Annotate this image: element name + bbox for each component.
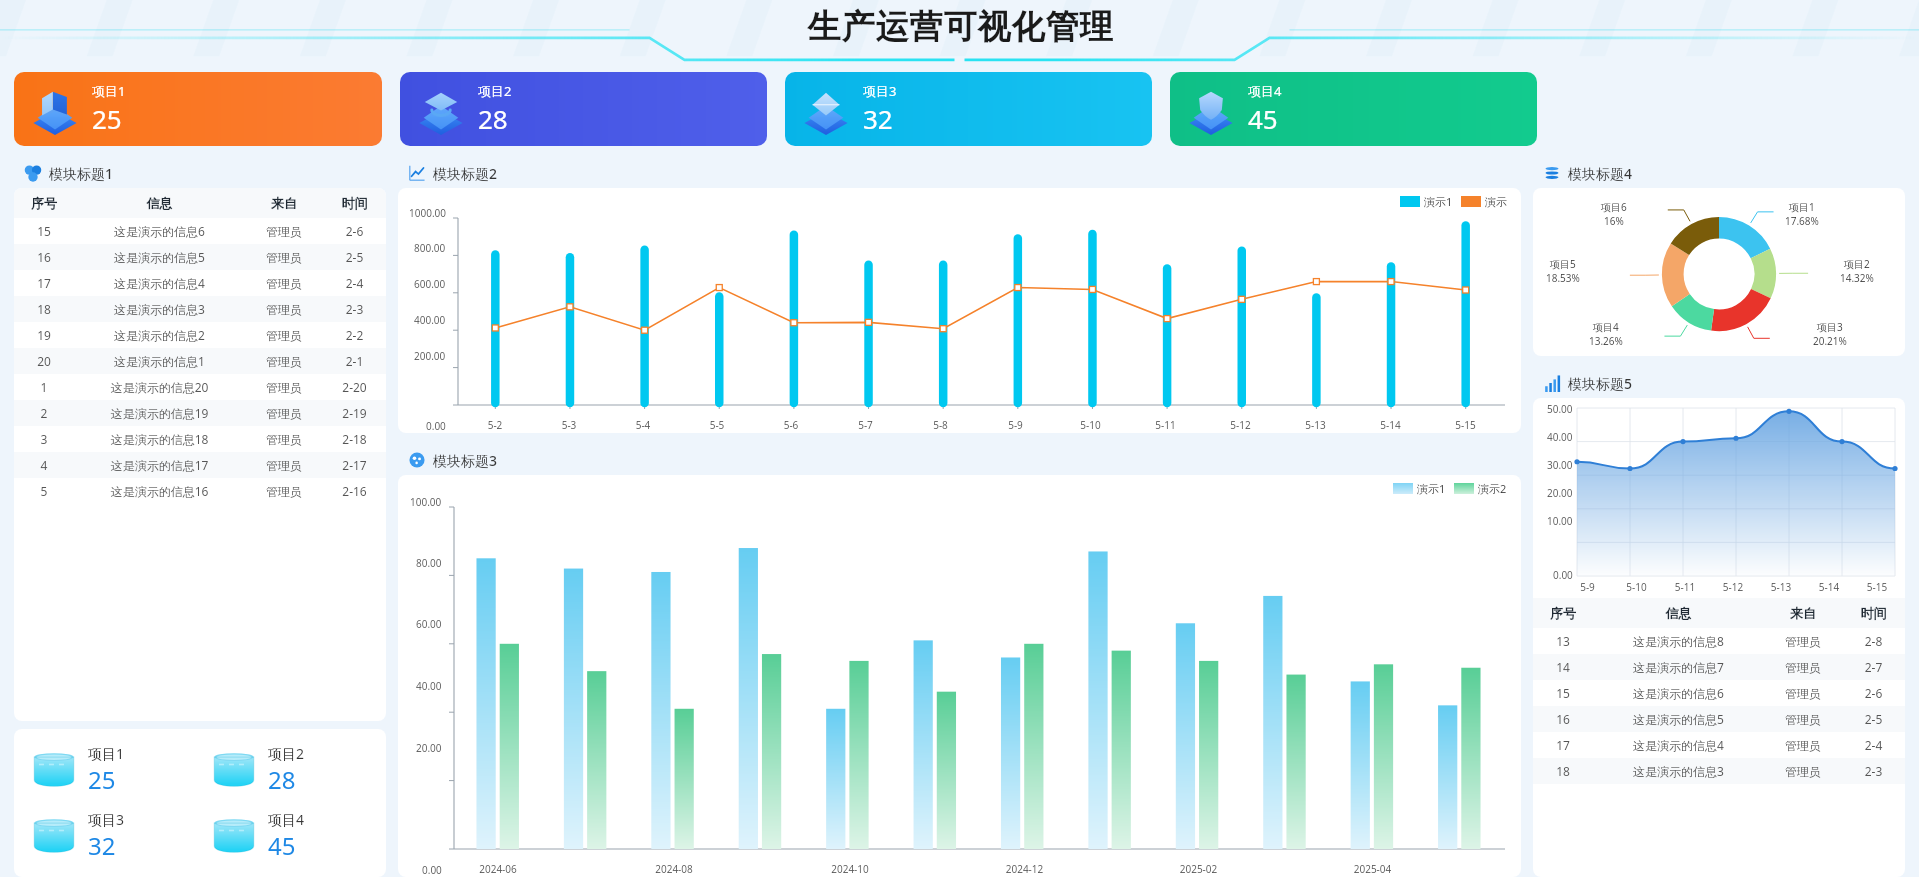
staticText: 5-13 bbox=[1278, 418, 1353, 432]
staticText: 30.00 bbox=[1547, 458, 1573, 472]
button[interactable]: 模块标题5 bbox=[1543, 368, 1905, 398]
staticText: 这是演示的信息3 bbox=[1593, 763, 1764, 779]
staticText: 18.53% bbox=[1546, 271, 1580, 285]
staticText: 2024-08 bbox=[630, 862, 718, 876]
button[interactable]: 3 bbox=[14, 426, 386, 452]
button[interactable]: 13 bbox=[1533, 628, 1905, 654]
staticText: 序号 bbox=[14, 195, 74, 211]
staticText: 5-10 bbox=[1612, 580, 1661, 594]
staticText: 项目1 bbox=[88, 744, 125, 763]
button[interactable]: 项目2 bbox=[400, 72, 767, 146]
staticText: 15 bbox=[14, 223, 74, 239]
staticText: 5-2 bbox=[458, 418, 532, 432]
staticText: 项目4 bbox=[1248, 82, 1282, 100]
staticText: 演示1 bbox=[1424, 194, 1453, 209]
staticText: 这是演示的信息2 bbox=[74, 327, 245, 343]
staticText: 管理员 bbox=[245, 484, 323, 499]
staticText: 这是演示的信息19 bbox=[74, 405, 245, 421]
staticText: 5-4 bbox=[606, 418, 680, 432]
button[interactable]: 项目1 bbox=[14, 72, 382, 146]
button[interactable]: 14 bbox=[1533, 654, 1905, 680]
staticText: 这是演示的信息6 bbox=[74, 223, 245, 239]
staticText: 5-10 bbox=[1053, 418, 1128, 432]
staticText: 项目2 bbox=[1844, 257, 1870, 271]
button[interactable]: 5 bbox=[14, 478, 386, 504]
staticText: 2-7 bbox=[1842, 659, 1905, 675]
staticText: 17 bbox=[14, 275, 74, 291]
button[interactable]: 15 bbox=[14, 218, 386, 244]
button[interactable]: 15 bbox=[1533, 680, 1905, 706]
button[interactable]: 模块标题4 bbox=[1543, 158, 1905, 188]
staticText: 管理员 bbox=[245, 354, 323, 369]
button[interactable]: 模块标题1 bbox=[24, 158, 386, 188]
staticText: 时间 bbox=[1842, 605, 1905, 621]
staticText: 管理员 bbox=[1764, 660, 1842, 675]
button[interactable]: 20 bbox=[14, 348, 386, 374]
button[interactable]: 项目4 bbox=[1170, 72, 1537, 146]
staticText: 2-16 bbox=[323, 483, 386, 499]
staticText: 1000.00 bbox=[409, 206, 446, 220]
other: 模块标题4 bbox=[1543, 164, 1561, 182]
staticText: 项目4 bbox=[1593, 320, 1619, 334]
button[interactable]: 18 bbox=[14, 296, 386, 322]
button[interactable]: 项目3 bbox=[20, 803, 200, 869]
button[interactable]: 项目2 bbox=[200, 737, 380, 803]
staticText: 模块标题5 bbox=[1568, 374, 1633, 393]
staticText: 600.00 bbox=[414, 277, 446, 291]
staticText: 28 bbox=[268, 763, 296, 796]
button[interactable]: 17 bbox=[1533, 732, 1905, 758]
staticText: 17 bbox=[1533, 737, 1593, 753]
staticText: 这是演示的信息4 bbox=[74, 275, 245, 291]
staticText: 模块标题2 bbox=[433, 164, 498, 183]
staticText: 2-17 bbox=[323, 457, 386, 473]
staticText: 5-8 bbox=[903, 418, 978, 432]
staticText: 管理员 bbox=[245, 432, 323, 447]
button[interactable]: 17 bbox=[14, 270, 386, 296]
staticText: 18 bbox=[1533, 763, 1593, 779]
staticText: 2-3 bbox=[323, 301, 386, 317]
staticText: 管理员 bbox=[245, 224, 323, 239]
button[interactable]: 16 bbox=[14, 244, 386, 270]
staticText: 60.00 bbox=[416, 617, 442, 631]
staticText: 这是演示的信息4 bbox=[1593, 737, 1764, 753]
staticText: 管理员 bbox=[245, 406, 323, 421]
staticText: 2-1 bbox=[323, 353, 386, 369]
button[interactable]: 1 bbox=[14, 374, 386, 400]
button[interactable]: 项目1 bbox=[20, 737, 200, 803]
staticText: 2025-02 bbox=[1155, 862, 1242, 876]
staticText: 5 bbox=[14, 483, 74, 499]
staticText: 800.00 bbox=[414, 241, 446, 255]
staticText: 这是演示的信息7 bbox=[1593, 659, 1764, 675]
button[interactable]: 模块标题2 bbox=[408, 158, 1521, 188]
other: 模块标题3 bbox=[408, 451, 426, 469]
staticText: 这是演示的信息20 bbox=[74, 379, 245, 395]
button[interactable]: 项目3 bbox=[785, 72, 1152, 146]
staticText: 序号 bbox=[1533, 605, 1593, 621]
staticText: 这是演示的信息5 bbox=[1593, 711, 1764, 727]
staticText: 16 bbox=[14, 249, 74, 265]
staticText: 32 bbox=[863, 101, 893, 136]
staticText: 2-6 bbox=[323, 223, 386, 239]
button[interactable]: 2 bbox=[14, 400, 386, 426]
staticText: 17.68% bbox=[1785, 214, 1819, 228]
staticText: 管理员 bbox=[245, 276, 323, 291]
staticText: 1 bbox=[14, 379, 74, 395]
staticText: 来自 bbox=[1764, 605, 1842, 621]
staticText: 16 bbox=[1533, 711, 1593, 727]
button[interactable]: 18 bbox=[1533, 758, 1905, 784]
staticText: 400.00 bbox=[414, 313, 446, 327]
staticText: 项目3 bbox=[863, 82, 897, 100]
staticText: 2-8 bbox=[1842, 633, 1905, 649]
staticText: 2024-10 bbox=[806, 862, 894, 876]
button[interactable]: 19 bbox=[14, 322, 386, 348]
button[interactable]: 项目4 bbox=[200, 803, 380, 869]
button[interactable]: 16 bbox=[1533, 706, 1905, 732]
staticText: 5-9 bbox=[978, 418, 1053, 432]
button[interactable]: 模块标题3 bbox=[408, 445, 1521, 475]
staticText: 来自 bbox=[245, 195, 323, 211]
staticText: 2-4 bbox=[1842, 737, 1905, 753]
staticText: 管理员 bbox=[1764, 686, 1842, 701]
button[interactable]: 4 bbox=[14, 452, 386, 478]
